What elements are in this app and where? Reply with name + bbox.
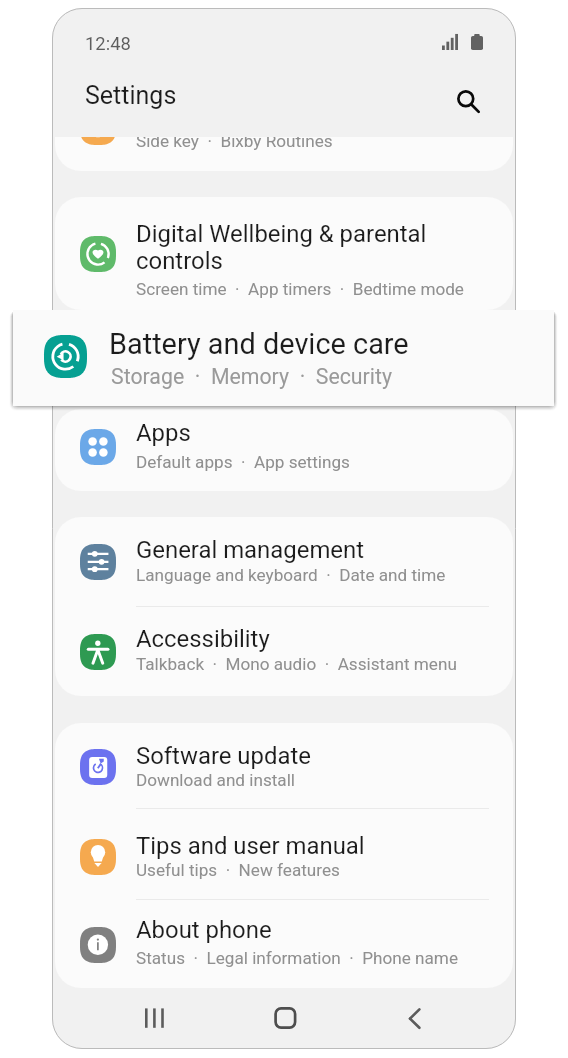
staticText: 12:48 (85, 33, 131, 55)
staticText: Apps (136, 419, 191, 447)
staticText: Status · Legal information · Phone name (136, 948, 458, 968)
staticText: General management (136, 536, 365, 564)
button[interactable]: Digital Wellbeing & parental (55, 197, 513, 310)
staticText: Settings (85, 81, 177, 110)
button[interactable]: Search (442, 70, 490, 118)
button[interactable]: Battery and device care (13, 310, 554, 406)
button[interactable]: Back (382, 988, 446, 1049)
button[interactable]: Apps (55, 409, 513, 491)
button[interactable]: Recents (126, 988, 190, 1049)
staticText: Default apps · App settings (136, 452, 350, 472)
button[interactable]: General management (55, 517, 513, 696)
button[interactable]: Advanced features (55, 137, 513, 171)
staticText: Accessibility (136, 625, 270, 653)
staticText: Language and keyboard · Date and time (136, 565, 446, 585)
staticText: Storage · Memory · Security (111, 364, 393, 389)
staticText: Download and install (136, 770, 296, 790)
staticText: Side key · Bixby Routines (136, 137, 333, 151)
staticText: Software update (136, 742, 311, 770)
staticText: Screen time · App timers · Bedtime mode (136, 279, 464, 299)
staticText: Battery and device care (109, 327, 409, 361)
staticText: Tips and user manual (136, 832, 365, 860)
button[interactable]: Software update (55, 723, 513, 988)
staticText: Digital Wellbeing & parental (136, 220, 427, 248)
staticText: Useful tips · New features (136, 860, 340, 880)
staticText: About phone (136, 916, 272, 944)
staticText: Talkback · Mono audio · Assistant menu (136, 654, 457, 674)
button[interactable]: Home (252, 988, 316, 1049)
staticText: controls (136, 247, 223, 275)
